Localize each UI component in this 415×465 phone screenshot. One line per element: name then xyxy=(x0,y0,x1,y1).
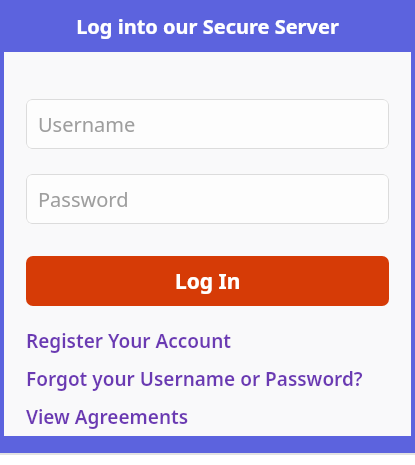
staticText: Log In xyxy=(175,267,241,296)
staticText: Username xyxy=(38,111,136,138)
button[interactable]: Password xyxy=(26,174,389,224)
button[interactable]: Username xyxy=(26,99,389,149)
staticText: Log into our Secure Server xyxy=(76,13,339,40)
button[interactable]: View Agreements xyxy=(26,398,389,436)
staticText: Forgot your Username or Password? xyxy=(26,366,363,392)
button[interactable]: Log In xyxy=(26,256,389,306)
staticText: Register Your Account xyxy=(26,328,232,354)
button[interactable]: Register Your Account xyxy=(26,322,389,360)
button[interactable]: Forgot your Username or Password? xyxy=(26,360,389,398)
staticText: Password xyxy=(38,186,129,213)
staticText: View Agreements xyxy=(26,404,189,430)
